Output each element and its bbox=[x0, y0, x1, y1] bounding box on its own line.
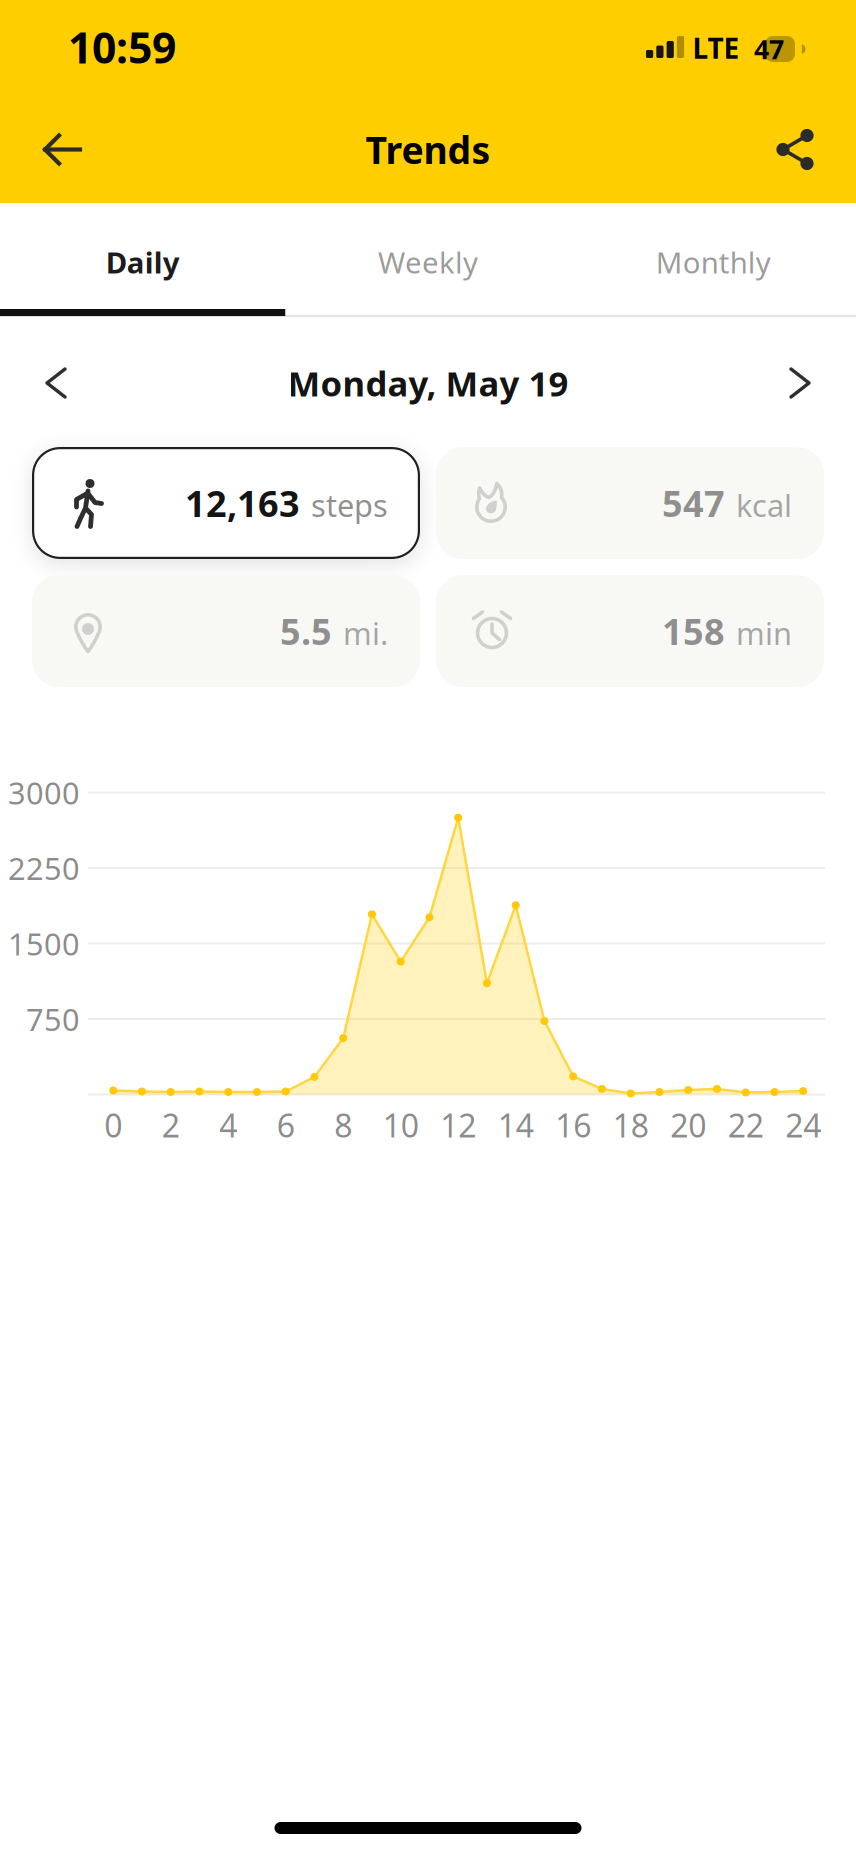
button[interactable]: Share bbox=[764, 119, 824, 179]
staticText: 8 bbox=[334, 1104, 352, 1146]
staticText: 47 bbox=[754, 31, 784, 67]
button[interactable]: 547 bbox=[436, 447, 824, 559]
button[interactable]: Daily bbox=[0, 207, 285, 317]
staticText: min bbox=[736, 613, 792, 653]
button[interactable]: Next day bbox=[778, 361, 822, 405]
staticText: 22 bbox=[728, 1104, 764, 1146]
button[interactable]: Monthly bbox=[571, 207, 856, 317]
staticText: Monday, May 19 bbox=[287, 360, 568, 406]
staticText: 14 bbox=[498, 1104, 534, 1146]
button[interactable]: 5.5 bbox=[32, 575, 420, 687]
staticText: 158 bbox=[662, 607, 725, 655]
staticText: 4 bbox=[219, 1104, 237, 1146]
staticText: Weekly bbox=[378, 242, 478, 281]
staticText: Daily bbox=[106, 242, 180, 281]
staticText: 5.5 bbox=[280, 607, 332, 655]
staticText: 6 bbox=[277, 1104, 295, 1146]
staticText: 18 bbox=[613, 1104, 649, 1146]
staticText: 16 bbox=[555, 1104, 591, 1146]
staticText: mi. bbox=[343, 613, 388, 653]
staticText: steps bbox=[311, 485, 388, 525]
staticText: LTE bbox=[692, 29, 739, 67]
button[interactable]: Previous day bbox=[34, 361, 78, 405]
button[interactable]: Back bbox=[32, 119, 92, 179]
button[interactable]: 158 bbox=[436, 575, 824, 687]
staticText: 547 bbox=[662, 479, 725, 527]
staticText: 3000 bbox=[8, 772, 80, 813]
staticText: 2 bbox=[162, 1104, 180, 1146]
staticText: 2250 bbox=[8, 848, 80, 888]
button[interactable]: 12,163 bbox=[32, 447, 420, 559]
staticText: Monthly bbox=[656, 242, 771, 281]
staticText: 1500 bbox=[8, 923, 80, 964]
staticText: 750 bbox=[26, 999, 80, 1039]
button[interactable]: Weekly bbox=[285, 207, 571, 317]
staticText: Trends bbox=[365, 125, 490, 174]
staticText: 10:59 bbox=[68, 19, 176, 75]
staticText: 20 bbox=[670, 1104, 706, 1146]
staticText: 10 bbox=[383, 1104, 419, 1146]
staticText: 12,163 bbox=[185, 479, 300, 527]
staticText: 0 bbox=[104, 1104, 122, 1146]
staticText: kcal bbox=[736, 485, 792, 525]
staticText: 12 bbox=[440, 1104, 476, 1146]
staticText: 24 bbox=[785, 1104, 821, 1146]
